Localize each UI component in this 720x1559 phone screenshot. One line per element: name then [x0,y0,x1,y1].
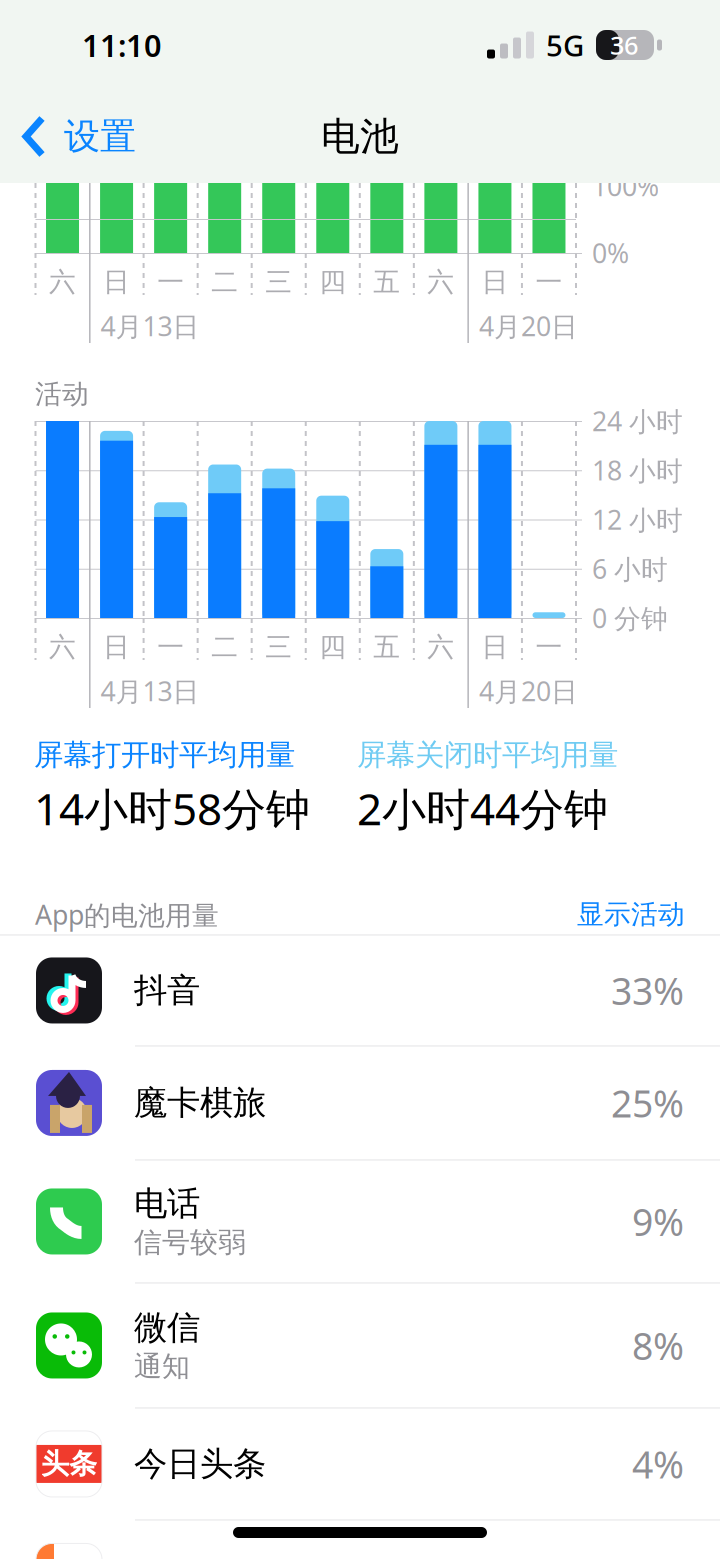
button[interactable]: 魔卡棋旅 [0,1046,720,1159]
staticText: 2小时44分钟 [357,779,608,837]
staticText: 4月20日 [479,308,578,344]
staticText: 11:10 [82,25,162,65]
staticText: 4月20日 [479,673,578,709]
staticText: 电池 [321,113,399,160]
staticText: 36 [610,28,638,62]
staticText: 100% [592,168,659,204]
staticText: 24 小时 [592,403,683,439]
button[interactable]: 电话 [0,1160,720,1282]
staticText: 9% [632,1197,684,1246]
button[interactable]: 番茄小说 [0,1520,720,1559]
staticText: 微信 [134,1307,200,1348]
staticText: 五 [373,266,400,298]
staticText: 活动 [35,378,89,410]
staticText: 头条 [41,1447,97,1481]
staticText: 二 [211,631,238,663]
staticText: 六 [427,266,454,298]
staticText: 屏幕关闭时平均用量 [357,737,618,773]
staticText: 六 [49,631,76,663]
staticText: 信号较弱 [134,1225,246,1260]
staticText: 抖音 [134,970,200,1011]
staticText: 一 [157,631,184,663]
button[interactable]: 设置 [0,90,154,183]
staticText: 日 [103,266,130,298]
staticText: 14小时58分钟 [34,779,310,837]
staticText: 日 [481,266,508,298]
staticText: 一 [157,266,184,298]
staticText: 设置 [64,114,136,159]
staticText: 六 [427,631,454,663]
staticText: 8% [632,1321,684,1370]
staticText: 6 小时 [592,551,668,586]
staticText: 日 [481,631,508,663]
button[interactable]: 显示活动 [577,898,685,931]
staticText: 二 [211,266,238,298]
staticText: 四 [319,631,346,663]
staticText: 四 [319,266,346,298]
staticText: 日 [103,631,130,663]
staticText: 5G [546,25,584,64]
staticText: 33% [611,966,684,1015]
staticText: 三 [265,631,292,663]
staticText: App的电池用量 [35,897,219,932]
button[interactable]: 头条 [0,1408,720,1519]
staticText: 12 小时 [592,502,683,537]
staticText: 0 分钟 [592,600,668,636]
staticText: 今日头条 [134,1443,266,1484]
staticText: 五 [373,631,400,663]
staticText: 4月13日 [100,308,199,344]
staticText: 一 [535,631,562,663]
staticText: 六 [49,266,76,298]
button[interactable]: 微信 [0,1283,720,1407]
staticText: 通知 [134,1349,190,1384]
staticText: 4% [632,1439,684,1489]
staticText: 0% [592,235,629,271]
staticText: 18 小时 [592,452,683,488]
staticText: 屏幕打开时平均用量 [34,737,295,773]
staticText: 25% [611,1078,684,1128]
staticText: 电话 [134,1183,200,1224]
staticText: 一 [535,266,562,298]
staticText: 4月13日 [100,673,199,709]
staticText: 魔卡棋旅 [134,1082,266,1123]
button[interactable]: 抖音 [0,935,720,1045]
staticText: 三 [265,266,292,298]
staticText: 显示活动 [577,898,685,931]
